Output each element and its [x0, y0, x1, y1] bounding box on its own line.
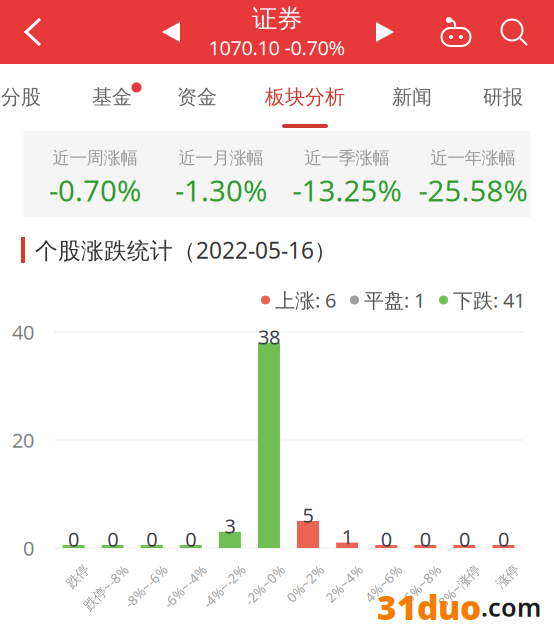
staticText: 5	[302, 502, 313, 528]
staticText: 8%~涨停	[418, 561, 471, 579]
staticText: -2%~0%	[226, 561, 276, 579]
staticText: 近一季涨幅	[304, 147, 389, 169]
button[interactable]: 新闻	[362, 66, 462, 128]
staticText: 3	[224, 512, 235, 539]
staticText: 1	[342, 523, 353, 550]
staticText: 新闻	[392, 85, 432, 109]
staticText: 4%~6%	[347, 561, 393, 579]
staticText: -6%~-4%	[144, 561, 198, 579]
button[interactable]: 板块分析	[255, 66, 355, 128]
staticText: -25.58%	[418, 170, 527, 209]
staticText: 0	[459, 526, 470, 552]
staticText: 跌停~-8%	[63, 561, 120, 579]
staticText: 近一月涨幅	[178, 147, 263, 169]
staticText: 跌停	[54, 562, 80, 578]
staticText: 2%~4%	[308, 561, 354, 579]
button[interactable]: Next stock	[365, 10, 405, 54]
staticText: 0	[420, 526, 431, 552]
staticText: 近一年涨幅	[430, 147, 515, 169]
staticText: 个股涨跌统计（2022-05-16）	[35, 235, 337, 265]
staticText: 0	[498, 526, 509, 552]
staticText: 基金	[92, 85, 132, 109]
button[interactable]: 资金	[147, 66, 247, 128]
staticText: 上涨: 6	[275, 287, 336, 313]
staticText: 20	[12, 427, 34, 453]
staticText: 下跌: 41	[453, 287, 525, 313]
staticText: 6%~8%	[386, 561, 432, 579]
button[interactable]: 证券	[187, 4, 367, 60]
button[interactable]: Search	[492, 10, 536, 54]
button[interactable]: 基金	[62, 66, 162, 128]
staticText: 0	[107, 526, 118, 552]
staticText: 资金	[177, 85, 217, 109]
staticText: 40	[12, 319, 34, 345]
staticText: 板块分析	[265, 85, 345, 109]
staticText: 分股	[1, 85, 41, 109]
button[interactable]: Back	[10, 7, 56, 57]
staticText: 0	[68, 526, 79, 552]
staticText: -8%~-6%	[105, 561, 159, 579]
staticText: -0.70%	[49, 170, 141, 209]
staticText: 近一周涨幅	[52, 147, 137, 169]
staticText: 研报	[483, 85, 523, 109]
button[interactable]: Previous stock	[151, 10, 191, 54]
staticText: 0	[381, 526, 392, 552]
button[interactable]: 研报	[453, 66, 553, 128]
button[interactable]: AI assistant	[434, 10, 478, 54]
staticText: 平盘: 1	[364, 287, 425, 313]
staticText: 0%~2%	[269, 561, 315, 579]
staticText: .com	[481, 590, 541, 624]
staticText: 涨停	[484, 562, 510, 578]
button[interactable]: 分股	[0, 66, 71, 128]
staticText: 0	[23, 535, 34, 561]
staticText: 证券	[252, 3, 302, 34]
staticText: 1070.10 -0.70%	[208, 34, 345, 61]
staticText: 0	[146, 526, 157, 552]
staticText: -1.30%	[175, 170, 267, 209]
staticText: -13.25%	[292, 170, 401, 209]
staticText: 31duo	[377, 585, 481, 629]
staticText: 38	[258, 323, 280, 350]
staticText: -4%~-2%	[183, 561, 237, 579]
staticText: 0	[185, 526, 196, 552]
